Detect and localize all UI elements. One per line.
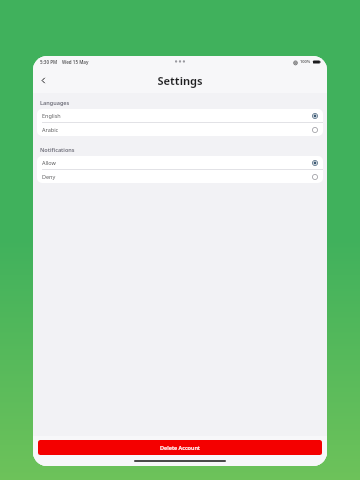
staticText: Deny: [42, 173, 56, 180]
staticText: Allow: [42, 159, 56, 166]
button[interactable]: Deny: [37, 170, 323, 183]
staticText: Wed 15 May: [62, 59, 89, 65]
button[interactable]: English: [37, 109, 323, 122]
staticText: Settings: [157, 73, 203, 88]
button[interactable]: Delete Account: [38, 440, 322, 455]
staticText: Delete Account: [160, 444, 200, 451]
staticText: 100%: [300, 59, 311, 64]
button[interactable]: Allow: [37, 156, 323, 169]
button[interactable]: Back: [36, 73, 50, 87]
staticText: Arabic: [42, 126, 59, 133]
staticText: 5:30 PM: [40, 59, 58, 65]
staticText: Languages: [40, 99, 70, 106]
button[interactable]: Arabic: [37, 123, 323, 136]
staticText: English: [42, 112, 61, 119]
staticText: Notifications: [40, 146, 75, 153]
